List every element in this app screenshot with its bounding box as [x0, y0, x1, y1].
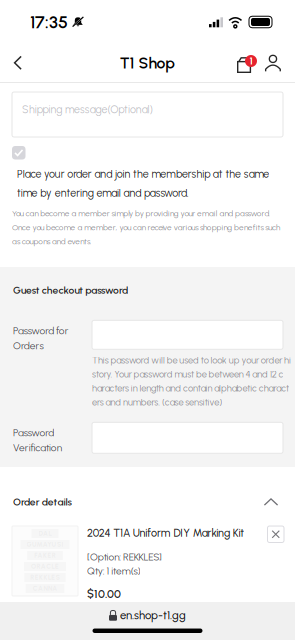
button[interactable]: en.shop-t1.gg — [109, 605, 186, 625]
button[interactable]: Collapse order details — [258, 491, 284, 513]
staticText: Place your order and join the membership… — [17, 168, 269, 180]
staticText: This password will be used to look up yo… — [92, 355, 291, 366]
staticText: Password — [13, 427, 54, 439]
button[interactable]: Remove item — [267, 526, 284, 542]
staticText: en.shop-t1.gg — [120, 608, 186, 622]
staticText: ers and numbers. (case sensitive) — [92, 397, 222, 408]
button[interactable]: Shopping bag, 1 item — [234, 44, 260, 82]
button[interactable]: Back — [3, 44, 33, 82]
staticText: time by entering email and password. — [17, 187, 189, 199]
staticText: Order details — [13, 496, 71, 508]
staticText: 17:35 — [30, 11, 68, 32]
staticText: 2024 T1A Uniform DIY Marking Kit — [87, 526, 244, 539]
staticText: Password for — [13, 325, 69, 337]
staticText: $10.00 — [87, 587, 121, 601]
staticText: Qty: 1 item(s) — [87, 565, 140, 577]
staticText: haracters in length and contain alphabet… — [92, 383, 289, 394]
staticText: as coupons and events. — [12, 237, 91, 246]
staticText: Guest checkout password — [13, 284, 128, 296]
staticText: 1 — [249, 55, 252, 67]
staticText: story. Your password must be between 4 a… — [92, 369, 283, 380]
staticText: Verification — [13, 442, 62, 454]
staticText: T1 Shop — [120, 54, 175, 72]
staticText: [Option: REKKLES] — [87, 551, 162, 563]
staticText: You can become a member simply by provid… — [12, 209, 270, 218]
staticText: Once you become a member, you can receiv… — [12, 223, 280, 232]
staticText: Shipping message(Optional) — [22, 103, 152, 116]
staticText: Orders — [13, 340, 43, 352]
button[interactable]: Account — [260, 44, 286, 82]
